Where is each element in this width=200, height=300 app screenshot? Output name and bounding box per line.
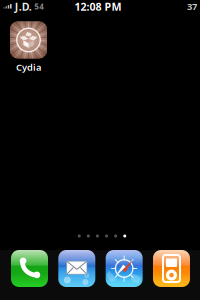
staticText: Cydia	[16, 61, 41, 73]
button[interactable]: Safari	[106, 250, 143, 287]
button[interactable]: iPod	[153, 250, 190, 287]
button[interactable]: Mail	[58, 250, 95, 287]
staticText: 37	[187, 0, 197, 13]
button[interactable]: Cydia	[4, 21, 52, 73]
staticText: J.D.	[15, 0, 32, 14]
button[interactable]: Phone	[11, 250, 48, 287]
staticText: 54	[34, 1, 44, 12]
staticText: 12:08 PM	[74, 0, 121, 14]
